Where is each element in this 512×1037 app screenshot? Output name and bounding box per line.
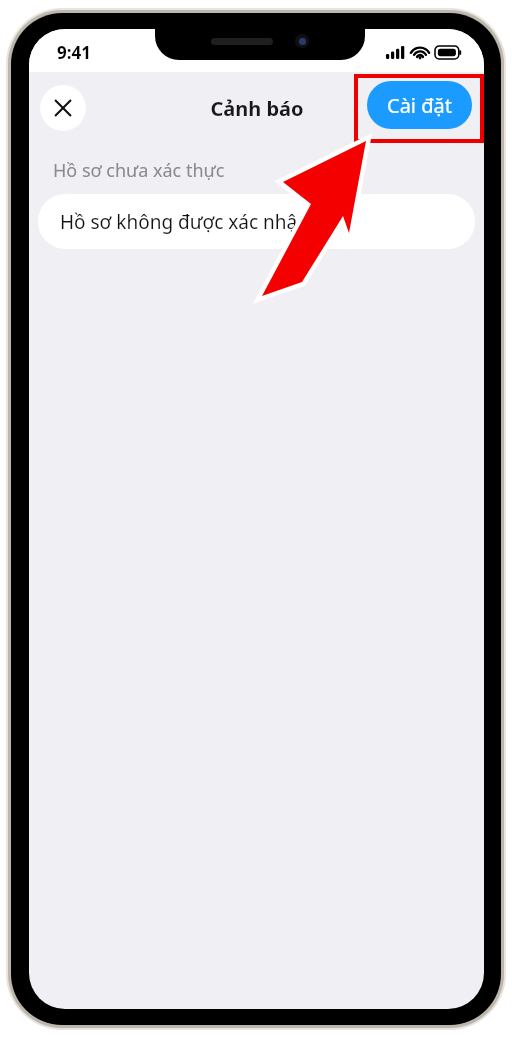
button[interactable]: Đóng: [40, 85, 86, 131]
staticText: Cài đặt: [387, 92, 452, 119]
staticText: Hồ sơ chưa xác thực: [53, 158, 225, 183]
staticText: Cảnh báo: [210, 95, 304, 122]
button[interactable]: Hồ sơ không được xác nhận.: [38, 194, 475, 249]
staticText: Hồ sơ không được xác nhận.: [60, 209, 315, 235]
button[interactable]: Cài đặt: [367, 81, 472, 129]
staticText: 9:41: [57, 41, 91, 64]
